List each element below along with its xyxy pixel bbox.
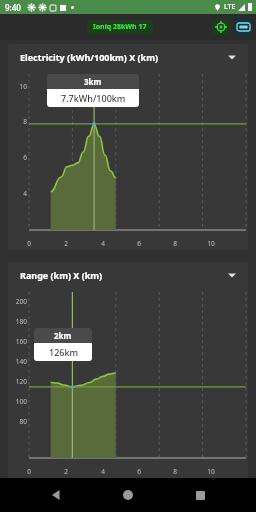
staticText: 6 xyxy=(8,153,27,162)
staticText: 2 xyxy=(59,239,73,248)
staticText: 10 xyxy=(8,82,27,91)
staticText: 160 xyxy=(8,337,27,346)
staticText: 8 xyxy=(168,239,182,248)
staticText: 6 xyxy=(132,239,146,248)
staticText: 2km xyxy=(54,330,72,341)
button[interactable]: Battery xyxy=(234,18,252,36)
staticText: 80 xyxy=(8,417,27,426)
staticText: 2 xyxy=(59,467,73,476)
staticText: 200 xyxy=(8,297,27,306)
staticText: 4 xyxy=(96,239,110,248)
button[interactable]: Electricity (kWh/100km) X (km) xyxy=(8,44,248,250)
staticText: 126km xyxy=(49,346,78,358)
staticText: 0 xyxy=(22,239,36,248)
staticText: 4 xyxy=(96,467,110,476)
staticText: 4 xyxy=(8,189,27,198)
staticText: 0 xyxy=(22,467,36,476)
staticText: 9:40 xyxy=(5,2,21,13)
button[interactable]: Back xyxy=(42,480,72,510)
staticText: 6 xyxy=(132,467,146,476)
button[interactable]: Expand xyxy=(224,267,240,283)
button[interactable]: Range (km) X (km) xyxy=(8,262,248,478)
staticText: 120 xyxy=(8,377,27,386)
staticText: 180 xyxy=(8,317,27,326)
button[interactable]: Home xyxy=(113,480,143,510)
staticText: LTE xyxy=(224,2,236,12)
staticText: Electricity (kWh/100km) X (km) xyxy=(20,51,159,63)
staticText: 7.7kWh/100km xyxy=(61,92,126,104)
staticText: 8 xyxy=(168,467,182,476)
staticText: 140 xyxy=(8,357,27,366)
button[interactable]: Expand xyxy=(224,49,240,65)
staticText: 100 xyxy=(8,397,27,406)
staticText: 8 xyxy=(8,117,27,126)
staticText: Range (km) X (km) xyxy=(20,269,103,281)
button[interactable]: Recents xyxy=(185,480,215,510)
staticText: Ioniq 28kWh 17 xyxy=(93,22,147,32)
button[interactable]: GPS xyxy=(212,18,230,36)
staticText: 3km xyxy=(84,76,102,87)
staticText: 10 xyxy=(204,239,218,248)
staticText: 10 xyxy=(204,467,218,476)
button[interactable]: Ioniq 28kWh 17 xyxy=(87,20,153,34)
